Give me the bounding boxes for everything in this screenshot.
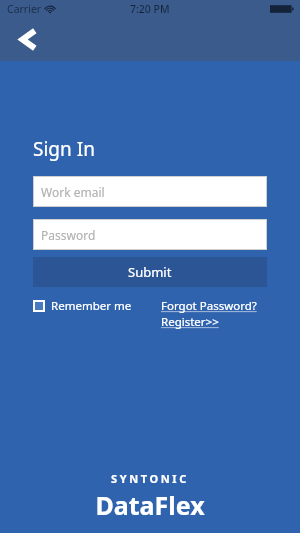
staticText: Work email [41, 184, 105, 200]
button[interactable]: Forgot Password? [161, 298, 257, 314]
staticText: SYNTONIC [111, 471, 189, 486]
staticText: Sign In [33, 136, 95, 162]
button[interactable]: Password [33, 219, 267, 250]
button[interactable]: Register>> [161, 314, 219, 330]
staticText: DataFlex [95, 488, 205, 522]
button[interactable]: Remember me [33, 298, 132, 314]
button[interactable]: Work email [33, 176, 267, 207]
staticText: 7:20 PM [130, 2, 170, 16]
button[interactable]: Back [12, 23, 44, 55]
staticText: Carrier [7, 2, 42, 16]
staticText: Remember me [51, 298, 132, 314]
staticText: Submit [128, 263, 172, 281]
button[interactable]: Submit [33, 257, 267, 287]
staticText: Password [41, 227, 96, 243]
